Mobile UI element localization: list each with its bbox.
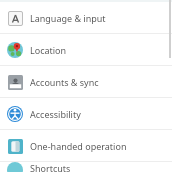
other: One-handed operation [8,139,23,154]
button[interactable]: Location [0,34,172,65]
other: Language and input [8,11,23,26]
button[interactable]: One-handed operation [0,130,172,161]
staticText: Location [30,44,67,56]
other: Accessibility [7,106,23,122]
other: Accounts and sync [8,75,23,90]
button[interactable]: Accounts and sync [0,66,172,97]
other: Location [7,42,23,58]
staticText: Shortcuts [30,162,71,172]
button[interactable]: Language and input [0,2,172,33]
button[interactable]: Accessibility [0,98,172,129]
other: Shortcuts [7,162,23,172]
button[interactable]: Shortcuts [0,162,172,172]
staticText: Language & input [30,12,106,24]
staticText: Accessibility [30,108,81,120]
staticText: Accounts & sync [30,76,99,88]
staticText: One-handed operation [30,140,127,152]
